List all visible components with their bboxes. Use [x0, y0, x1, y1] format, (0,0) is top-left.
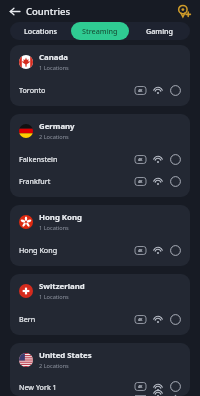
button[interactable]: Switzerland	[10, 274, 190, 335]
staticText: Bern	[19, 314, 135, 324]
button[interactable]: Streaming	[71, 22, 129, 40]
staticText: 4K	[138, 157, 143, 162]
staticText: 4K	[138, 248, 143, 253]
staticText: Locations	[24, 26, 57, 36]
button[interactable]: Germany	[10, 114, 190, 197]
staticText: Canada	[39, 52, 69, 63]
button[interactable]: New York 1	[19, 377, 181, 396]
staticText: Falkenstein	[19, 154, 135, 164]
button[interactable]: United States	[10, 343, 190, 396]
staticText: 1 Locations	[39, 64, 69, 72]
button[interactable]: Canada	[10, 45, 190, 106]
staticText: 2 Locations	[39, 362, 69, 370]
staticText: Hong Kong	[19, 245, 135, 255]
staticText: 4K	[138, 88, 143, 93]
staticText: Frankfurt	[19, 176, 135, 186]
button[interactable]: Frankfurt	[19, 170, 181, 192]
button[interactable]: Locations	[11, 22, 69, 40]
staticText: Hong Kong	[39, 212, 82, 223]
staticText: Germany	[39, 121, 75, 132]
button[interactable]: Bern	[19, 308, 181, 330]
button[interactable]: Hong Kong	[10, 205, 190, 266]
staticText: 4K	[138, 384, 143, 389]
button[interactable]: Toronto	[19, 79, 181, 101]
button[interactable]: Gaming	[131, 22, 189, 40]
staticText: New York 1	[19, 382, 135, 392]
staticText: Streaming	[82, 26, 118, 36]
button[interactable]: Back	[5, 2, 23, 20]
staticText: 2 Locations	[39, 133, 69, 141]
staticText: Gaming	[146, 26, 174, 36]
button[interactable]: Add location	[174, 1, 194, 21]
staticText: 4K	[138, 179, 143, 184]
staticText: Toronto	[19, 85, 135, 95]
staticText: Countries	[26, 5, 71, 18]
staticText: 4K	[138, 317, 143, 322]
staticText: United States	[39, 350, 92, 361]
button[interactable]: Falkenstein	[19, 148, 181, 170]
staticText: Switzerland	[39, 281, 85, 292]
button[interactable]: Hong Kong	[19, 239, 181, 261]
staticText: 1 Locations	[39, 224, 69, 232]
staticText: 1 Locations	[39, 293, 69, 301]
